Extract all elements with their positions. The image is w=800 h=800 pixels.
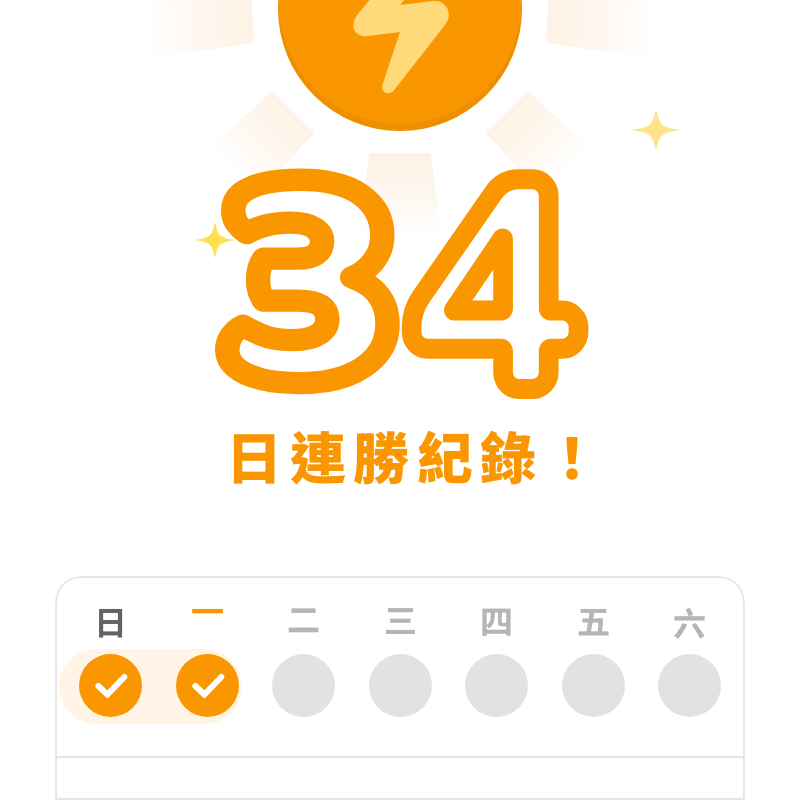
button[interactable] <box>272 576 335 717</box>
button[interactable] <box>369 576 432 717</box>
button[interactable] <box>465 576 528 717</box>
button[interactable] <box>658 576 721 717</box>
button[interactable] <box>79 576 142 717</box>
button[interactable] <box>176 576 239 717</box>
button[interactable] <box>562 576 625 717</box>
